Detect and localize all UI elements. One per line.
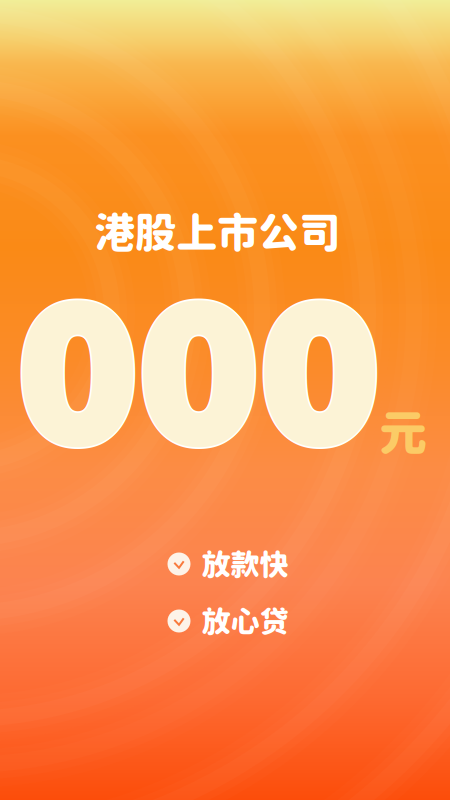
staticText: 000 [17, 242, 380, 517]
staticText: 放款快 [201, 547, 288, 581]
button[interactable]: 放款快 [167, 547, 288, 581]
staticText: 港股上市公司 [94, 208, 340, 256]
staticText: 000 [16, 241, 379, 515]
staticText: 000 [17, 239, 380, 514]
staticText: 000 [17, 241, 380, 515]
staticText: 放心贷 [201, 604, 288, 638]
staticText: 000 [19, 241, 382, 515]
staticText: 元 [379, 404, 427, 460]
button[interactable]: 放心贷 [167, 604, 288, 638]
